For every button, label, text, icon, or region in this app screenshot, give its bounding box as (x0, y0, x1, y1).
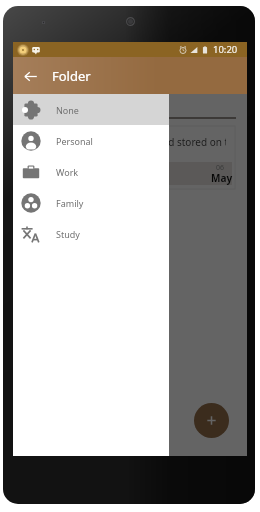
staticText: Folder (52, 67, 91, 85)
button[interactable]: This is a note that was created and stor… (21, 126, 235, 189)
button[interactable]: Work (13, 156, 169, 187)
staticText: Personal (56, 135, 93, 147)
button[interactable]: Study (13, 218, 169, 249)
button[interactable]: Back (13, 59, 47, 93)
staticText: None (56, 104, 79, 116)
staticText: This is a note that was created and stor… (13, 135, 226, 149)
staticText: Work (56, 166, 79, 178)
button[interactable]: None (13, 94, 169, 125)
button[interactable]: Family (13, 187, 169, 218)
staticText: 06 (216, 163, 225, 173)
button[interactable]: Add note (194, 403, 229, 438)
button[interactable]: Personal (13, 125, 169, 156)
staticText: Family (56, 197, 84, 209)
staticText: May (211, 171, 233, 185)
staticText: Study (56, 228, 80, 240)
staticText: 10:20 (213, 43, 238, 56)
